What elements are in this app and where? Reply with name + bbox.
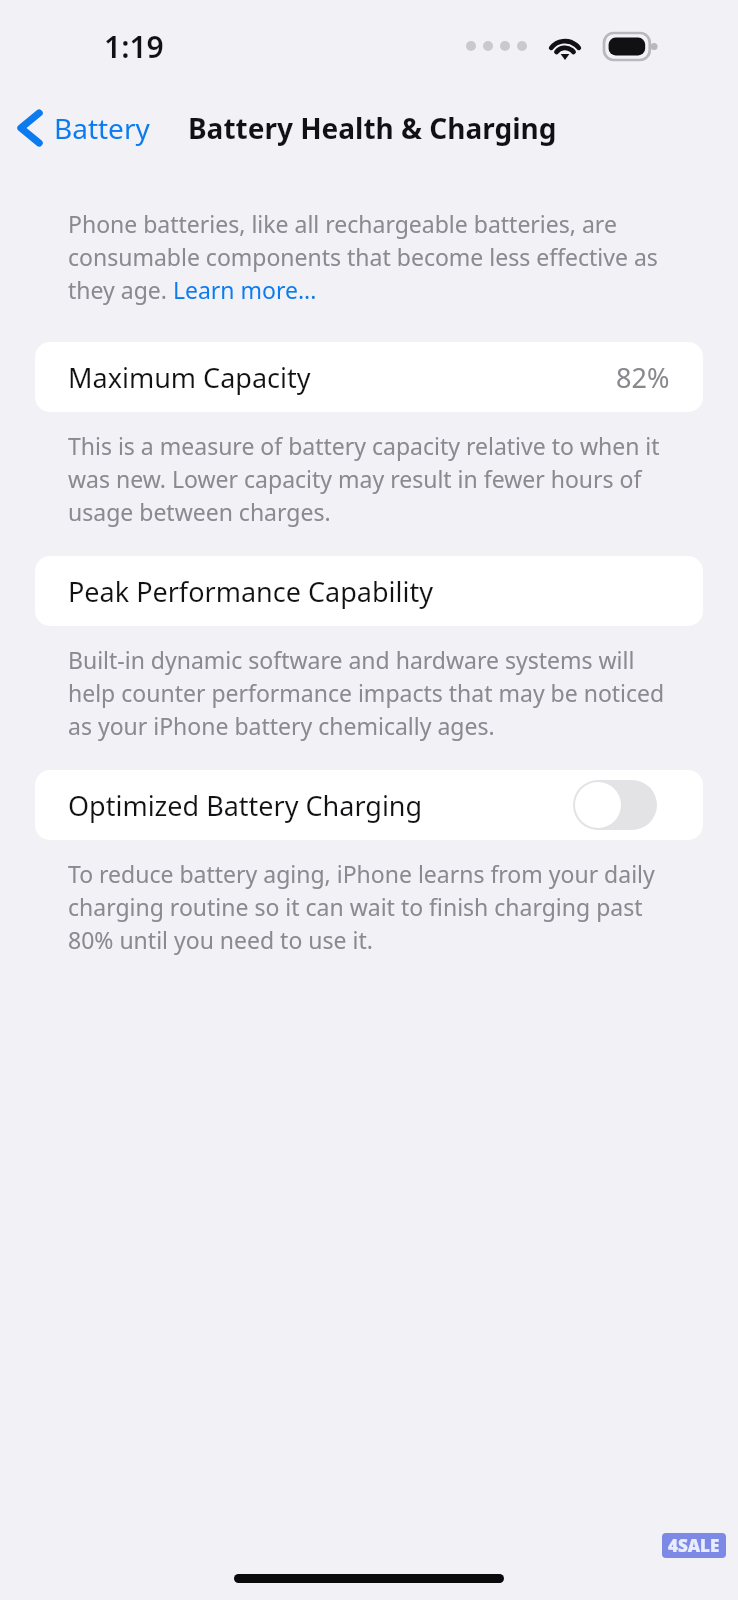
button[interactable]: Battery [0,103,164,153]
staticText: 1:19 [104,26,164,67]
button[interactable]: Peak Performance Capability [35,556,703,626]
staticText: Battery [54,109,150,147]
button[interactable]: Optimized Battery Charging toggle, off [573,780,657,830]
staticText: Peak Performance Capability [68,573,433,610]
staticText: This is a measure of battery capacity re… [68,430,676,528]
staticText: To reduce battery aging, iPhone learns f… [68,858,676,956]
staticText: Battery Health & Charging [188,109,557,147]
staticText: Phone batteries, like all rechargeable b… [68,208,676,306]
staticText: 4SALE [668,1534,720,1557]
button[interactable]: Optimized Battery Charging [35,770,703,840]
staticText: Maximum Capacity [68,359,311,396]
staticText: Built-in dynamic software and hardware s… [68,644,676,742]
button[interactable]: Maximum Capacity [35,342,703,412]
staticText: 82% [616,359,670,396]
staticText: Optimized Battery Charging [68,787,423,824]
